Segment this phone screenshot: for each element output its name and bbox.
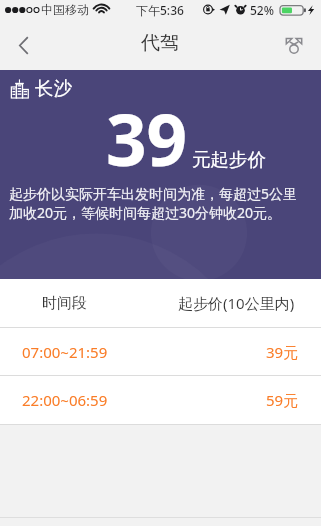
staticText: 长沙 — [35, 77, 72, 100]
staticText: 39 — [106, 90, 188, 187]
staticText: 时间段 — [42, 294, 87, 313]
staticText: 中国移动 — [41, 2, 89, 17]
staticText: 下午5:36 — [136, 2, 184, 18]
staticText: 07:00~21:59 — [22, 342, 108, 362]
button[interactable]: 22:00~06:59 — [0, 376, 321, 424]
button[interactable]: Share — [272, 23, 316, 67]
staticText: 39元 — [266, 342, 299, 362]
staticText: 59元 — [266, 390, 299, 410]
staticText: 起步价以实际开车出发时间为准，每超过5公里 — [9, 184, 298, 203]
staticText: 代驾 — [141, 31, 179, 55]
staticText: 起步价(10公里内) — [178, 293, 295, 313]
staticText: 22:00~06:59 — [22, 390, 108, 410]
button[interactable]: 07:00~21:59 — [0, 328, 321, 375]
button[interactable]: Back — [0, 22, 46, 68]
staticText: 元起步价 — [192, 148, 266, 171]
staticText: 加收20元，等候时间每超过30分钟收20元。 — [9, 203, 282, 222]
staticText: 52% — [250, 2, 274, 18]
